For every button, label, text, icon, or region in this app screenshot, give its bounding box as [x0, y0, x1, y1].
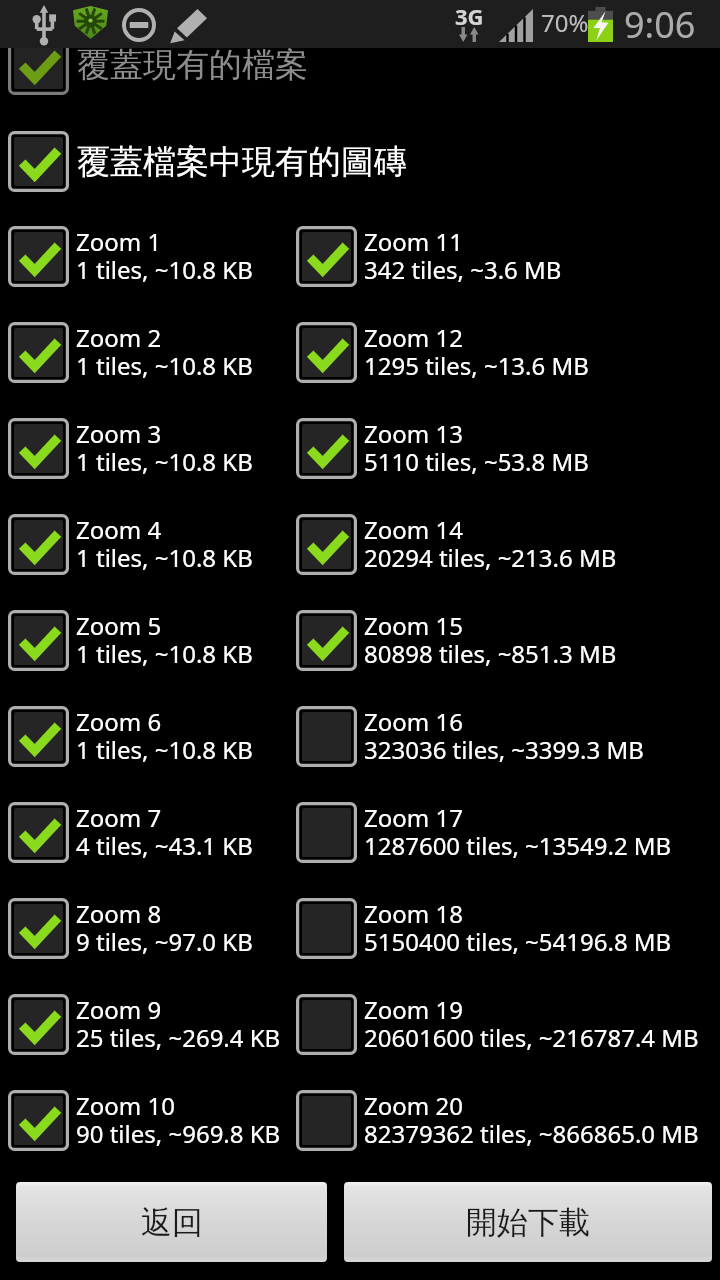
button[interactable]: Zoom 9 25 tiles, ~269.4 KB	[8, 994, 288, 1055]
button[interactable]: 返回	[16, 1182, 327, 1262]
staticText: 覆蓋現有的檔案	[77, 44, 308, 86]
button[interactable]: Zoom 18 5150400 tiles, ~54196.8 MB	[296, 898, 716, 959]
staticText: Zoom 17 1287600 tiles, ~13549.2 MB	[364, 805, 672, 861]
staticText: Zoom 13 5110 tiles, ~53.8 MB	[364, 421, 589, 477]
button[interactable]: Zoom 5 1 tiles, ~10.8 KB	[8, 610, 288, 671]
button[interactable]: 覆蓋現有的檔案	[8, 34, 704, 95]
button[interactable]: Zoom 6 1 tiles, ~10.8 KB	[8, 706, 288, 767]
staticText: Zoom 19 20601600 tiles, ~216787.4 MB	[364, 997, 699, 1053]
staticText: Zoom 2 1 tiles, ~10.8 KB	[76, 325, 253, 381]
button[interactable]: Zoom 16 323036 tiles, ~3399.3 MB	[296, 706, 716, 767]
button[interactable]: Zoom 4 1 tiles, ~10.8 KB	[8, 514, 288, 575]
staticText: Zoom 6 1 tiles, ~10.8 KB	[76, 709, 253, 765]
staticText: 9:06	[624, 0, 696, 48]
staticText: Zoom 3 1 tiles, ~10.8 KB	[76, 421, 253, 477]
button[interactable]: Zoom 8 9 tiles, ~97.0 KB	[8, 898, 288, 959]
staticText: 3G	[455, 1, 484, 31]
staticText: Zoom 20 82379362 tiles, ~866865.0 MB	[364, 1093, 699, 1149]
staticText: 覆蓋檔案中現有的圖磚	[77, 141, 407, 183]
staticText: 返回	[141, 1203, 203, 1242]
staticText: Zoom 8 9 tiles, ~97.0 KB	[76, 901, 253, 957]
button[interactable]: Zoom 12 1295 tiles, ~13.6 MB	[296, 322, 716, 383]
staticText: 70%	[541, 6, 589, 39]
staticText: Zoom 9 25 tiles, ~269.4 KB	[76, 997, 281, 1053]
staticText: Zoom 11 342 tiles, ~3.6 MB	[364, 229, 562, 285]
button[interactable]: Zoom 19 20601600 tiles, ~216787.4 MB	[296, 994, 716, 1055]
staticText: 開始下載	[466, 1203, 590, 1242]
staticText: Zoom 7 4 tiles, ~43.1 KB	[76, 805, 253, 861]
button[interactable]: Zoom 7 4 tiles, ~43.1 KB	[8, 802, 288, 863]
staticText: Zoom 5 1 tiles, ~10.8 KB	[76, 613, 253, 669]
staticText: Zoom 14 20294 tiles, ~213.6 MB	[364, 517, 617, 573]
button[interactable]: 覆蓋檔案中現有的圖磚	[8, 131, 704, 192]
staticText: Zoom 10 90 tiles, ~969.8 KB	[76, 1093, 281, 1149]
button[interactable]: Zoom 1 1 tiles, ~10.8 KB	[8, 226, 288, 287]
button[interactable]: Zoom 14 20294 tiles, ~213.6 MB	[296, 514, 716, 575]
button[interactable]: Zoom 13 5110 tiles, ~53.8 MB	[296, 418, 716, 479]
staticText: Zoom 15 80898 tiles, ~851.3 MB	[364, 613, 617, 669]
button[interactable]: Zoom 11 342 tiles, ~3.6 MB	[296, 226, 716, 287]
staticText: Zoom 12 1295 tiles, ~13.6 MB	[364, 325, 589, 381]
staticText: Zoom 1 1 tiles, ~10.8 KB	[76, 229, 253, 285]
button[interactable]: Zoom 15 80898 tiles, ~851.3 MB	[296, 610, 716, 671]
staticText: Zoom 4 1 tiles, ~10.8 KB	[76, 517, 253, 573]
button[interactable]: Zoom 17 1287600 tiles, ~13549.2 MB	[296, 802, 716, 863]
button[interactable]: Zoom 10 90 tiles, ~969.8 KB	[8, 1090, 288, 1151]
button[interactable]: 開始下載	[344, 1182, 712, 1262]
button[interactable]: Zoom 2 1 tiles, ~10.8 KB	[8, 322, 288, 383]
staticText: Zoom 16 323036 tiles, ~3399.3 MB	[364, 709, 644, 765]
staticText: Zoom 18 5150400 tiles, ~54196.8 MB	[364, 901, 672, 957]
button[interactable]: Zoom 3 1 tiles, ~10.8 KB	[8, 418, 288, 479]
button[interactable]: Zoom 20 82379362 tiles, ~866865.0 MB	[296, 1090, 716, 1151]
